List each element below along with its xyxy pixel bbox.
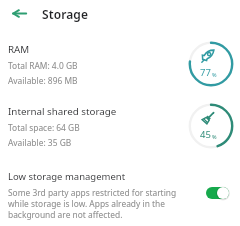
staticText: 45: [200, 128, 211, 141]
button[interactable]: Low storage management toggle: [206, 185, 230, 200]
staticText: Total space: 64 GB: [8, 122, 80, 133]
staticText: RAM: [8, 43, 30, 56]
staticText: Available: 896 MB: [8, 75, 78, 86]
staticText: 77: [200, 66, 211, 79]
staticText: Internal shared storage: [8, 105, 117, 118]
button[interactable]: RAM: [0, 41, 240, 87]
staticText: Available: 35 GB: [8, 137, 72, 148]
staticText: %: [212, 133, 217, 140]
button[interactable]: Low storage management: [0, 170, 240, 220]
staticText: Some 3rd party apps restricted for start…: [8, 187, 190, 220]
staticText: Low storage management: [8, 170, 126, 183]
staticText: %: [212, 71, 217, 78]
staticText: Storage: [42, 6, 89, 22]
button[interactable]: Back: [0, 0, 39, 27]
staticText: Total RAM: 4.0 GB: [8, 60, 78, 71]
button[interactable]: Internal shared storage: [0, 103, 240, 149]
